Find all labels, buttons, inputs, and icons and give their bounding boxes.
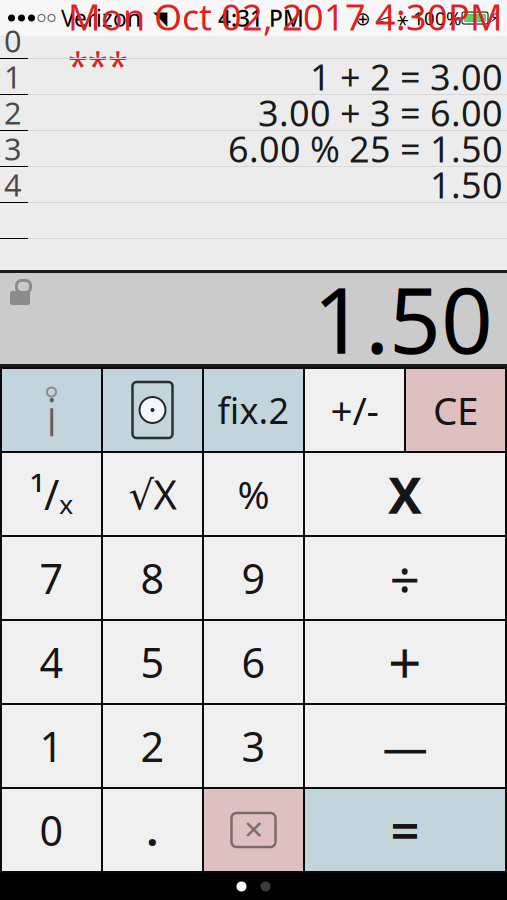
staticText: +	[388, 623, 422, 701]
button[interactable]: Info	[2, 369, 101, 451]
staticText: 8	[140, 551, 164, 605]
staticText: .	[146, 803, 158, 857]
button[interactable]: +/-	[305, 369, 404, 451]
staticText: 4	[39, 635, 63, 689]
button[interactable]: CE	[406, 369, 505, 451]
button[interactable]: 4	[2, 621, 101, 703]
button[interactable]: %	[204, 453, 303, 535]
button[interactable]: X	[305, 453, 505, 535]
button[interactable]: 8	[103, 537, 202, 619]
button[interactable]: 6	[204, 621, 303, 703]
button[interactable]: 9	[204, 537, 303, 619]
staticText: 7	[39, 551, 63, 605]
staticText: 0	[4, 20, 22, 61]
button[interactable]: 5	[103, 621, 202, 703]
staticText: 3.00 + 3 = 6.00	[258, 89, 503, 136]
staticText: Verizon	[55, 3, 141, 33]
staticText: 1	[39, 719, 63, 773]
staticText: =	[390, 796, 419, 864]
staticText: 9	[241, 551, 265, 605]
staticText: +/-	[330, 384, 378, 436]
staticText: fix.2	[217, 386, 289, 434]
button[interactable]: 0	[2, 789, 101, 871]
staticText: ⚡︎	[488, 9, 499, 27]
staticText: 1	[4, 56, 22, 97]
staticText: 3	[241, 719, 265, 773]
button[interactable]: =	[305, 789, 505, 871]
button[interactable]: Settings	[103, 369, 202, 451]
staticText: i	[45, 380, 57, 451]
staticText: %	[237, 468, 269, 520]
staticText: 3	[4, 128, 22, 169]
button[interactable]: .	[103, 789, 202, 871]
staticText: 1 + 2 = 3.00	[310, 53, 503, 100]
button[interactable]: —	[305, 705, 505, 787]
staticText: √X	[128, 467, 176, 520]
button[interactable]: 7	[2, 537, 101, 619]
staticText: X	[388, 460, 422, 528]
staticText: CE	[433, 384, 478, 436]
staticText: 5	[140, 635, 164, 689]
button[interactable]: √X	[103, 453, 202, 535]
button[interactable]: 2	[103, 705, 202, 787]
staticText: 1.50	[430, 161, 503, 208]
staticText: ¹/ₓ	[30, 467, 73, 521]
staticText: ⊕ ◅ ⚹ 100%	[355, 6, 462, 30]
staticText: —	[382, 716, 427, 776]
button[interactable]: ¹/ₓ	[2, 453, 101, 535]
button[interactable]: Backspace	[204, 789, 303, 871]
button[interactable]: 1	[2, 705, 101, 787]
staticText: 6	[241, 635, 265, 689]
button[interactable]: ÷	[305, 537, 505, 619]
staticText: 0	[39, 803, 63, 857]
staticText: 1.50	[313, 258, 493, 379]
staticText: 2	[140, 719, 164, 773]
staticText: ÷	[389, 543, 420, 613]
button[interactable]: fix.2	[204, 369, 303, 451]
button[interactable]: +	[305, 621, 505, 703]
staticText: 4:31 PM	[218, 3, 304, 33]
staticText: 6.00 % 25 = 1.50	[228, 125, 503, 172]
staticText: Mon Oct 02, 2017 4:30PM ***	[68, 0, 503, 88]
button[interactable]: 3	[204, 705, 303, 787]
staticText: ◥	[141, 7, 167, 29]
staticText: 2	[4, 92, 22, 133]
staticText: ✕	[243, 816, 264, 844]
staticText: 4	[4, 164, 22, 205]
